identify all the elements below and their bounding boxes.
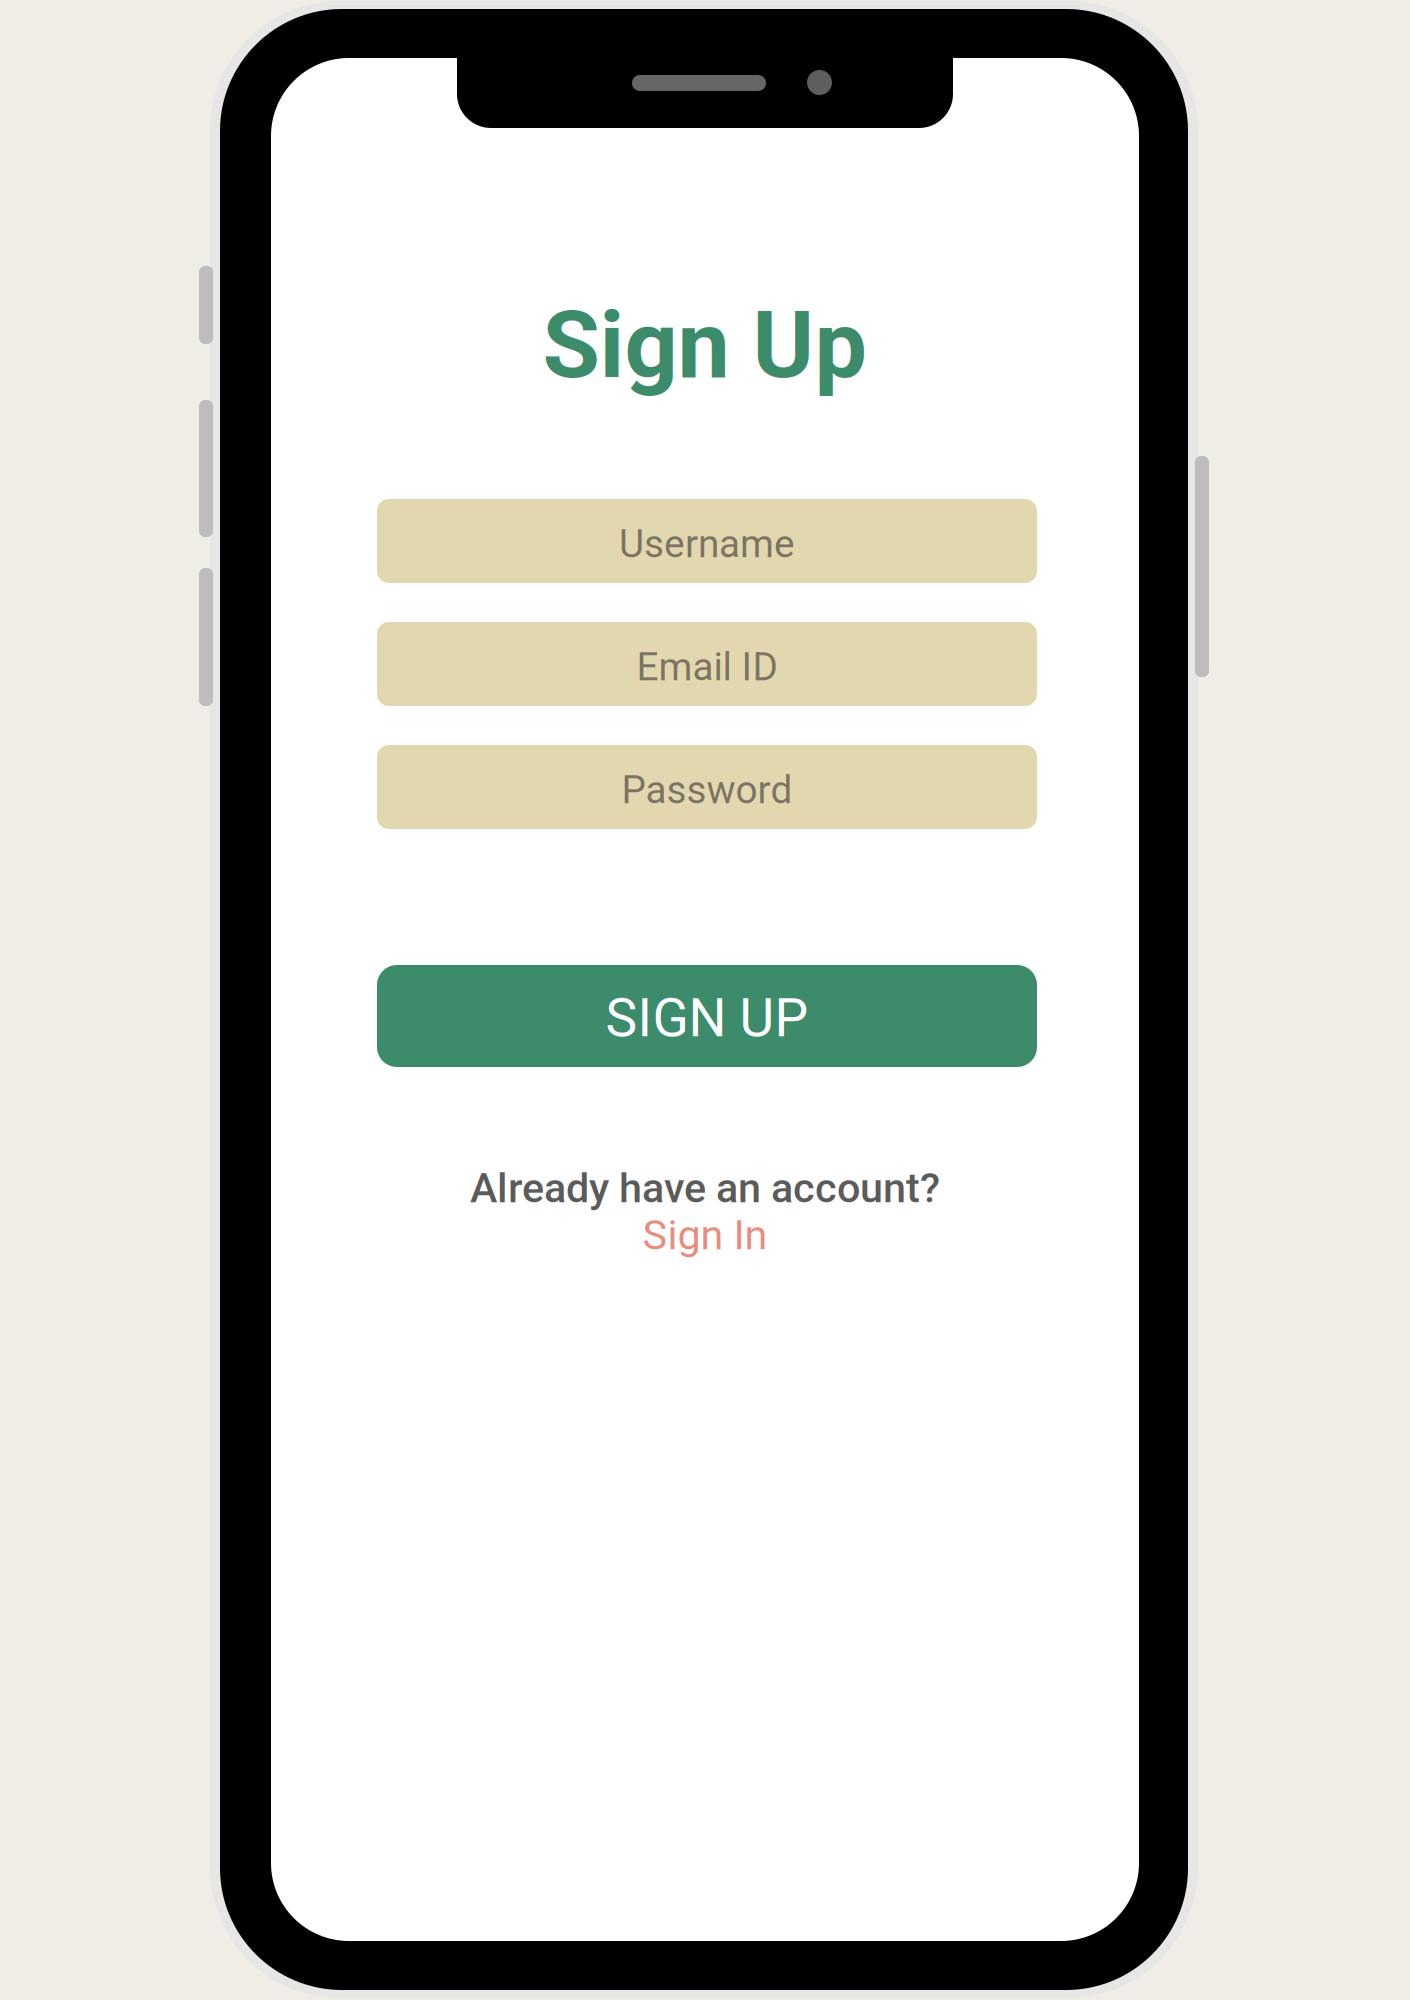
button[interactable]: Username bbox=[377, 499, 1037, 583]
staticText: Sign In bbox=[642, 1211, 767, 1259]
staticText: Email ID bbox=[636, 644, 777, 690]
button[interactable]: Sign In bbox=[605, 1209, 805, 1261]
staticText: Sign Up bbox=[542, 290, 867, 400]
staticText: Password bbox=[621, 767, 792, 813]
button[interactable]: Email ID bbox=[377, 622, 1037, 706]
button[interactable]: SIGN UP bbox=[377, 965, 1037, 1067]
staticText: SIGN UP bbox=[605, 987, 808, 1049]
button[interactable]: Password bbox=[377, 745, 1037, 829]
staticText: Username bbox=[619, 521, 795, 567]
staticText: Already have an account? bbox=[470, 1164, 940, 1212]
